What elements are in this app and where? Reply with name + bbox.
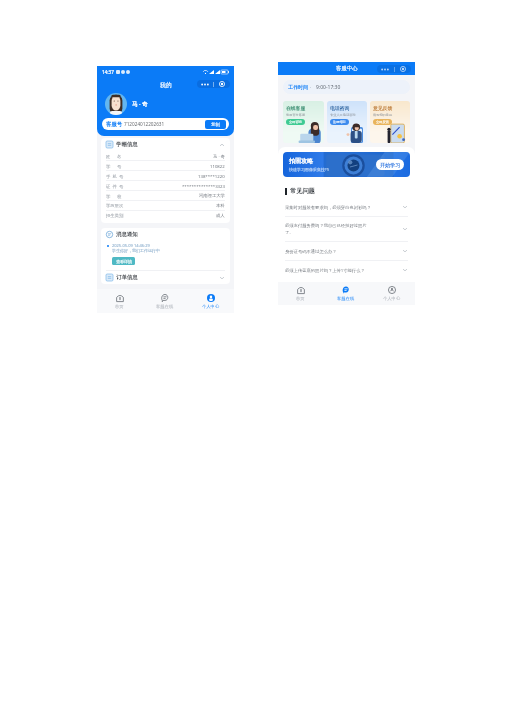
staticText: 证 件 号 [106,183,124,189]
staticText: 客服在线 [156,304,174,309]
staticText: 手 机 号 [106,173,124,179]
staticText: 立即反馈 [376,120,389,124]
staticText: 查看详情 [116,259,132,264]
staticText: 马 · 奇 [213,153,225,159]
staticText: 110822 [210,163,225,169]
staticText: 学 号 [106,163,122,169]
staticText: 138****1220 [198,173,225,179]
staticText: 必须上传蓝底的照片吗？上传1寸能行么？ [285,267,371,273]
staticText: 填写您的意见 [373,113,393,117]
staticText: 意见反馈 [373,105,393,111]
staticText: 复制 [211,122,220,128]
staticText: 客服号 [106,121,123,128]
staticText: 河南理工大学 [199,193,225,198]
staticText: 成人 [216,213,225,218]
staticText: 订单信息 [116,274,138,281]
staticText: 消息通知 [116,231,138,238]
staticText: 身份证号码不通过怎么办？ [285,249,371,254]
staticText: · [310,84,312,91]
button[interactable]: 必须支付服务费吗？我自己已经拍好过照片了。 [285,223,408,235]
staticText: 个人中心 [202,304,220,309]
staticText: 本科 [216,203,225,208]
staticText: **************3323 [182,183,225,189]
staticText: 常见问题 [290,187,315,195]
button[interactable]: 意见反馈 [370,101,410,143]
staticText: 客服在线 [337,296,355,301]
button[interactable]: More options [377,65,411,73]
staticText: 专业人工电话咨询 [330,113,356,117]
button[interactable]: 电话咨询 [327,101,367,143]
staticText: 首页 [296,296,305,301]
button[interactable]: 订单信息 [106,271,225,284]
button[interactable]: 个人中心 [369,282,415,305]
button[interactable]: 身份证号码不通过怎么办？ [285,248,408,254]
button[interactable]: More options [197,80,230,88]
staticText: 招生类别 [106,213,124,218]
staticText: 采集时对服装有要求吗，必须穿白色衬衫吗？ [285,205,371,210]
staticText: 拍照攻略 [289,157,313,165]
button[interactable]: 个人中心 [188,289,234,313]
button[interactable]: 消息通知 [106,228,225,241]
staticText: 注册指引 [333,120,346,124]
staticText: 学 校 [106,193,122,199]
staticText: 电话咨询 [330,105,350,111]
staticText: 立即咨询 [289,120,302,124]
button[interactable]: 拍照攻略 [283,152,410,177]
staticText: 姓 名 [106,153,122,159]
staticText: 个人中心 [383,296,401,301]
button[interactable]: 查看详情 [112,257,135,265]
staticText: 我的 [160,81,172,88]
button[interactable]: 首页 [278,282,323,305]
staticText: 2025-05-09 14:46:29 [112,243,150,248]
staticText: 必须支付服务费吗？我自己已经拍好过照片了。 [285,223,371,235]
button[interactable]: 复制 [205,120,226,129]
button[interactable]: 采集时对服装有要求吗，必须穿白色衬衫吗？ [285,204,408,210]
staticText: 712024012202631 [124,121,165,127]
staticText: 马 · 奇 [132,100,148,108]
staticText: 9:00-17:30 [316,84,341,91]
staticText: 开始学习 [380,162,400,168]
button[interactable]: 学籍信息 [106,138,225,151]
button[interactable]: 客服在线 [142,289,188,313]
button[interactable]: 客服号 [102,118,229,130]
button[interactable]: 在线客服 [283,101,324,143]
staticText: 首页 [115,304,124,309]
staticText: 客服中心 [336,65,358,72]
staticText: 在线客服 [286,105,306,111]
staticText: 学生你好，我们工作运行中 [112,248,160,253]
staticText: 学历层次 [106,203,124,208]
button[interactable]: 首页 [97,289,142,313]
button[interactable]: 客服在线 [323,282,369,305]
staticText: 使用官方客服 [286,113,306,117]
staticText: 14:37 [102,69,114,75]
staticText: 快速学习图像采集技巧 [289,167,329,172]
button[interactable]: 开始学习 [376,159,404,170]
button[interactable]: 工作时间 [288,80,405,94]
staticText: 学籍信息 [116,141,138,148]
staticText: 工作时间 [288,84,308,90]
button[interactable]: 必须上传蓝底的照片吗？上传1寸能行么？ [285,267,408,273]
